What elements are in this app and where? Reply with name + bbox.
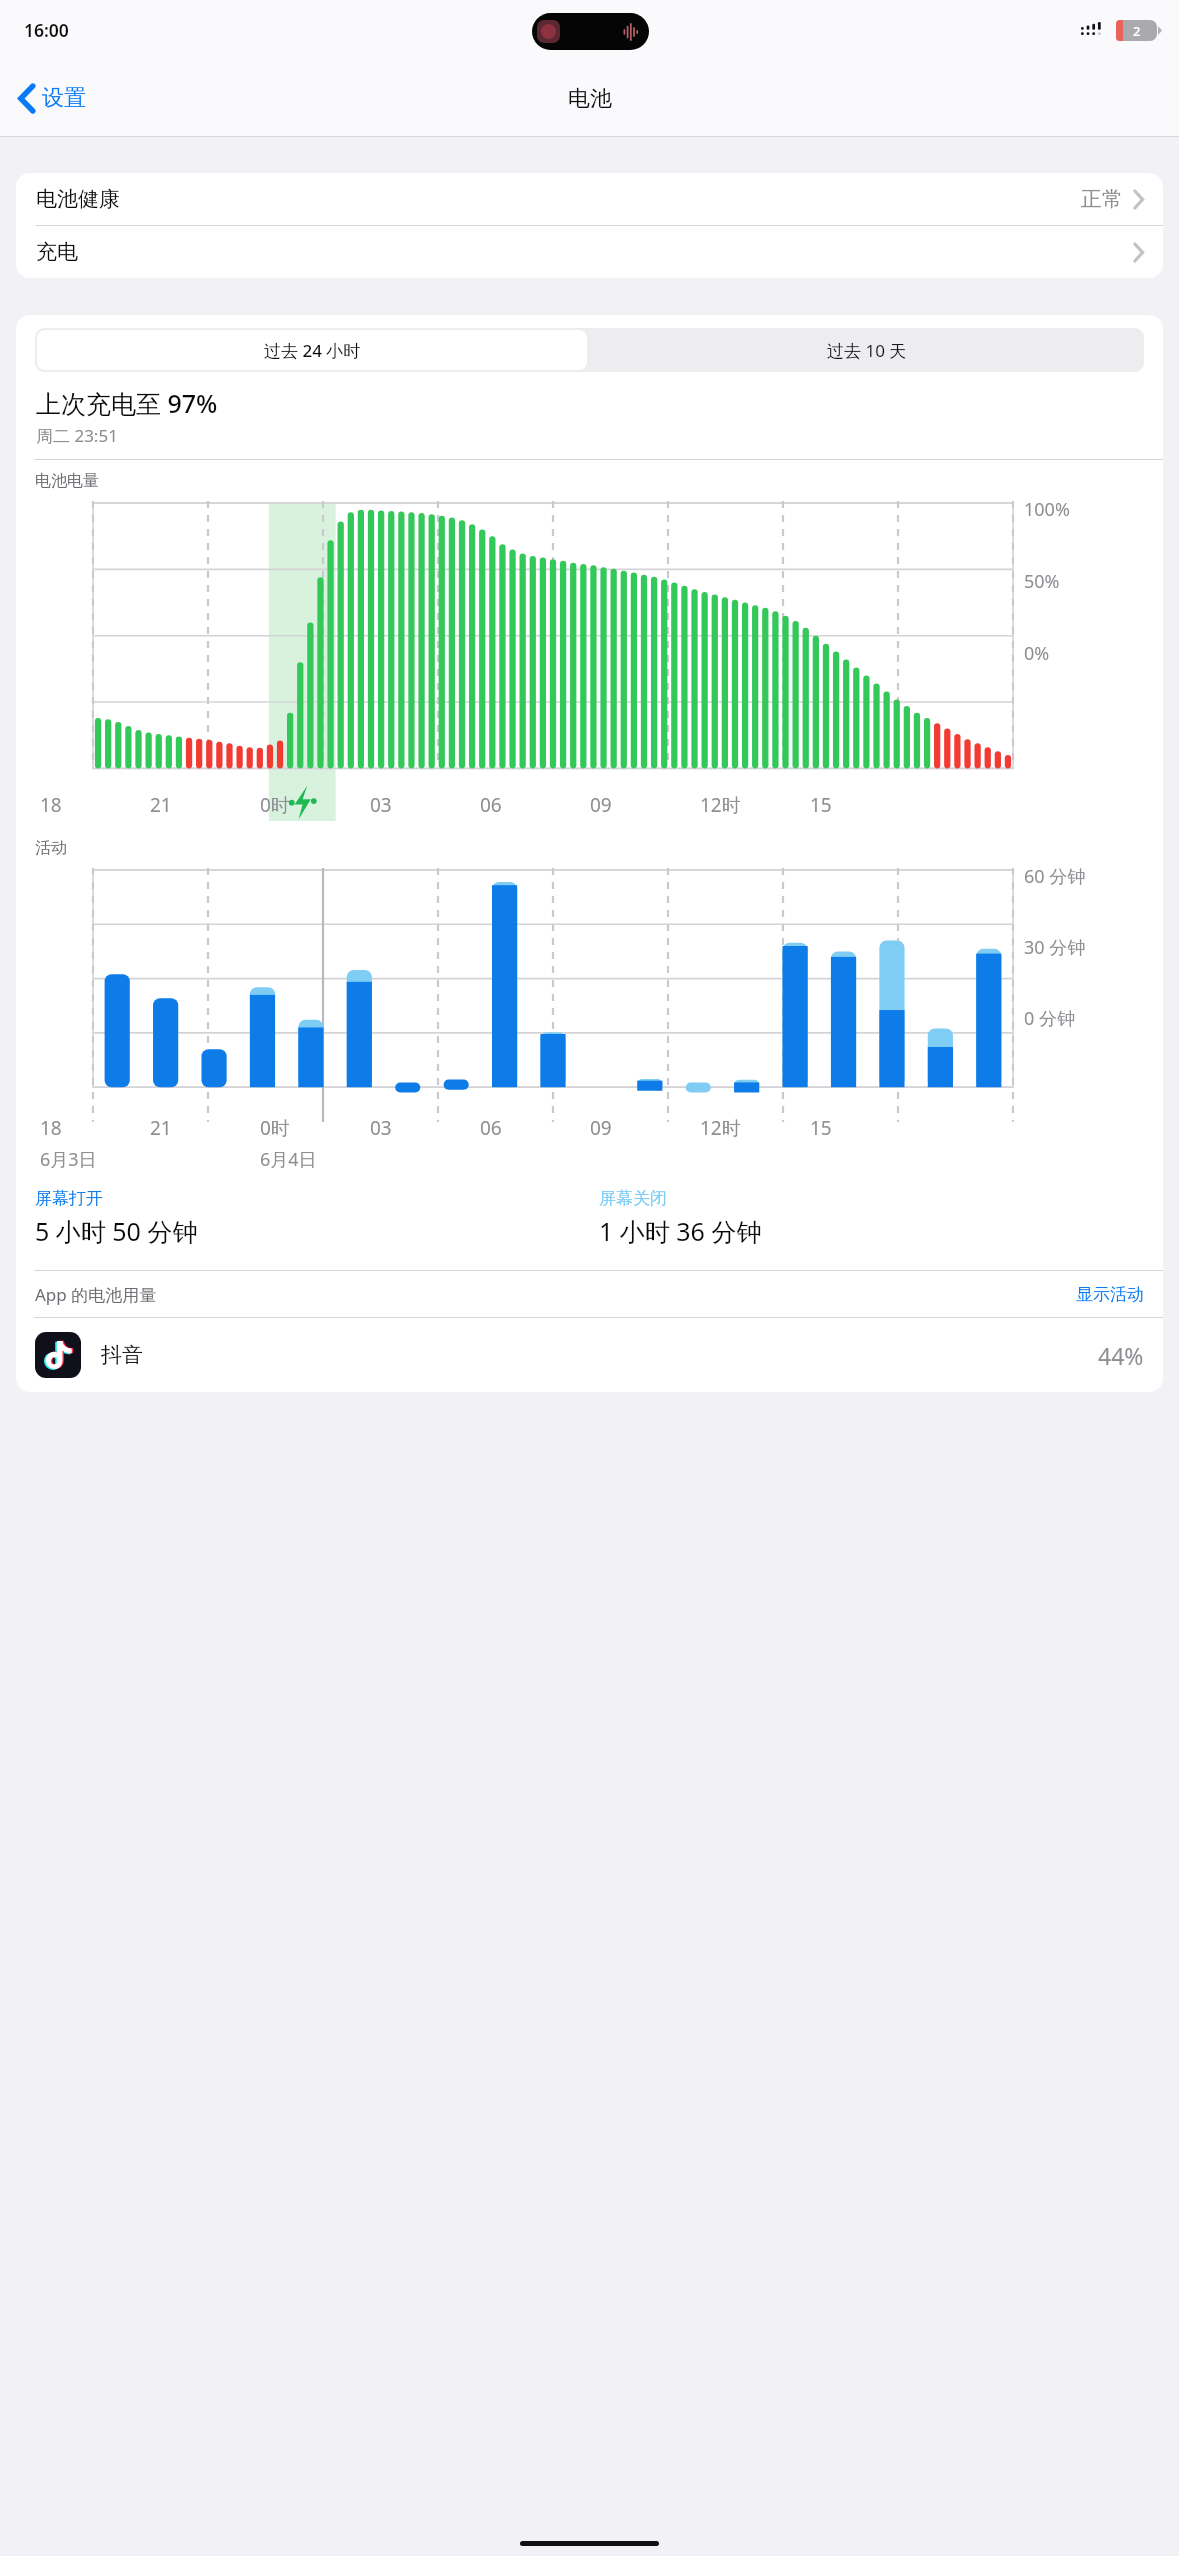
staticText: 18 <box>40 1115 62 1141</box>
button[interactable]: 显示活动 <box>1076 1284 1144 1305</box>
staticText: 设置 <box>42 84 86 112</box>
staticText: 正常 <box>1081 186 1123 212</box>
staticText: 44% <box>1098 1340 1144 1371</box>
staticText: 15 <box>810 792 832 818</box>
button[interactable]: 过去 24 小时 <box>37 330 587 370</box>
staticText: 21 <box>150 792 172 818</box>
staticText: 1 小时 36 分钟 <box>599 1214 762 1248</box>
staticText: 21 <box>150 1115 172 1141</box>
staticText: 30 分钟 <box>1024 935 1086 960</box>
staticText: 6月3日 <box>40 1147 97 1172</box>
staticText: 过去 10 天 <box>827 339 907 362</box>
staticText: 0时 <box>260 792 290 818</box>
staticText: 上次充电至 97% <box>36 386 218 420</box>
staticText: 09 <box>590 1115 612 1141</box>
staticText: 18 <box>40 792 62 818</box>
button[interactable]: 充电 <box>16 226 1163 278</box>
staticText: 12时 <box>700 792 741 818</box>
button[interactable]: 抖音 <box>16 1318 1163 1392</box>
staticText: 5 小时 50 分钟 <box>35 1214 198 1248</box>
staticText: 15 <box>810 1115 832 1141</box>
staticText: 屏幕打开 <box>35 1188 103 1209</box>
staticText: 屏幕关闭 <box>599 1188 667 1209</box>
staticText: 0 分钟 <box>1024 1006 1075 1031</box>
staticText: 周二 23:51 <box>36 424 118 447</box>
button[interactable]: 设置 <box>12 78 94 118</box>
button[interactable]: 电池健康 <box>16 173 1163 225</box>
staticText: 0时 <box>260 1115 290 1141</box>
staticText: 电池 <box>568 85 612 113</box>
staticText: 100% <box>1024 497 1070 522</box>
staticText: 抖音 <box>101 1342 143 1368</box>
staticText: 16:00 <box>24 18 69 42</box>
staticText: 09 <box>590 792 612 818</box>
staticText: 电池电量 <box>35 471 99 491</box>
staticText: 0% <box>1024 641 1050 666</box>
button[interactable]: 过去 10 天 <box>589 328 1144 372</box>
staticText: 06 <box>480 1115 502 1141</box>
staticText: 03 <box>370 1115 392 1141</box>
staticText: 50% <box>1024 569 1060 594</box>
staticText: 活动 <box>35 838 67 858</box>
staticText: 12时 <box>700 1115 741 1141</box>
staticText: 充电 <box>36 239 78 265</box>
staticText: 2 <box>1133 22 1141 40</box>
staticText: 6月4日 <box>260 1147 317 1172</box>
staticText: 过去 24 小时 <box>264 339 361 362</box>
staticText: 60 分钟 <box>1024 864 1086 889</box>
staticText: 显示活动 <box>1076 1284 1144 1305</box>
staticText: App 的电池用量 <box>35 1283 157 1306</box>
staticText: 06 <box>480 792 502 818</box>
staticText: 电池健康 <box>36 186 120 212</box>
staticText: 03 <box>370 792 392 818</box>
